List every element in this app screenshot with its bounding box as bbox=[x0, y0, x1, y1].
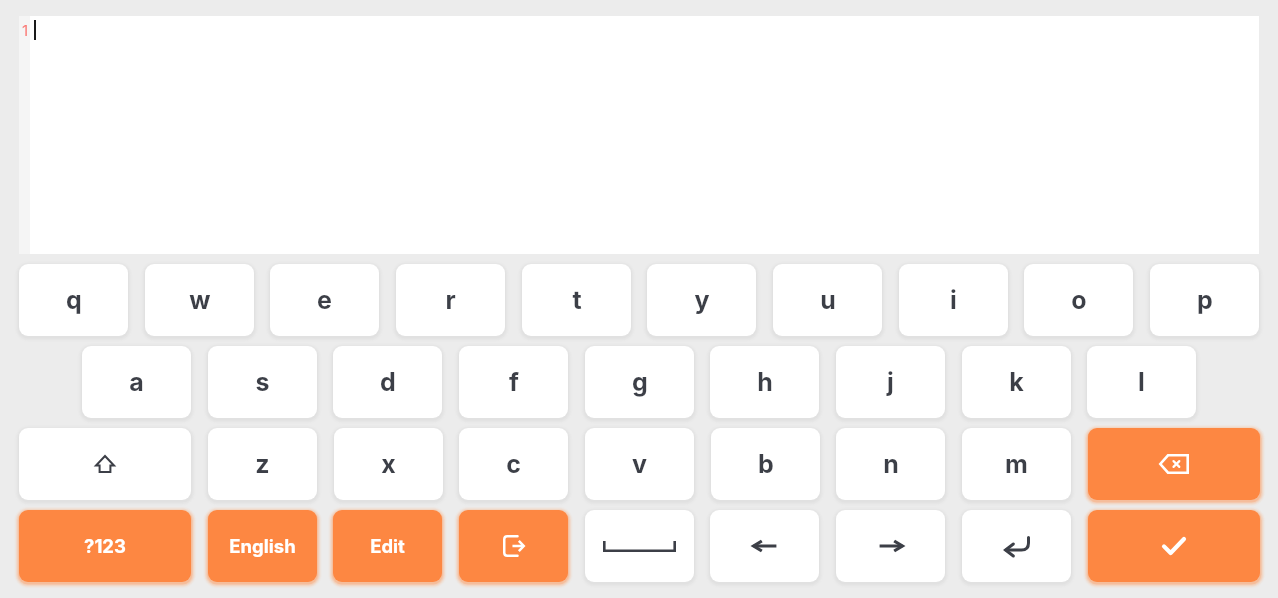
staticText: d bbox=[380, 367, 396, 397]
staticText: x bbox=[381, 449, 396, 479]
button[interactable]: Shift bbox=[19, 428, 191, 500]
button[interactable]: k bbox=[962, 346, 1071, 418]
button[interactable]: Exit bbox=[459, 510, 568, 582]
button[interactable]: u bbox=[773, 264, 882, 336]
button[interactable]: e bbox=[270, 264, 379, 336]
staticText: k bbox=[1009, 367, 1024, 397]
staticText: w bbox=[189, 285, 211, 315]
staticText: y bbox=[694, 285, 710, 315]
staticText: o bbox=[1071, 285, 1087, 315]
staticText: m bbox=[1005, 449, 1028, 479]
button[interactable]: Move cursor right bbox=[836, 510, 945, 582]
staticText: a bbox=[129, 367, 144, 397]
button[interactable]: a bbox=[82, 346, 191, 418]
button[interactable]: o bbox=[1024, 264, 1133, 336]
button[interactable]: l bbox=[1087, 346, 1196, 418]
button[interactable]: g bbox=[585, 346, 694, 418]
staticText: v bbox=[632, 449, 647, 479]
staticText: p bbox=[1197, 285, 1213, 315]
button[interactable]: m bbox=[962, 428, 1071, 500]
button[interactable]: t bbox=[522, 264, 631, 336]
staticText: g bbox=[632, 367, 648, 397]
button[interactable]: Done bbox=[1088, 510, 1260, 582]
button[interactable]: ?123 bbox=[19, 510, 191, 582]
staticText: z bbox=[255, 449, 270, 479]
button[interactable]: Space bbox=[585, 510, 694, 582]
staticText: l bbox=[1138, 367, 1145, 397]
button[interactable]: v bbox=[585, 428, 694, 500]
button[interactable]: English bbox=[208, 510, 317, 582]
button[interactable]: Move cursor left bbox=[710, 510, 819, 582]
button[interactable]: Backspace bbox=[1088, 428, 1260, 500]
button[interactable]: n bbox=[836, 428, 945, 500]
button[interactable]: c bbox=[459, 428, 568, 500]
staticText: 1 bbox=[22, 21, 29, 39]
button[interactable]: i bbox=[899, 264, 1008, 336]
staticText: n bbox=[883, 449, 899, 479]
staticText: j bbox=[887, 367, 894, 397]
button[interactable]: w bbox=[145, 264, 254, 336]
staticText: u bbox=[820, 285, 836, 315]
staticText: c bbox=[506, 449, 521, 479]
staticText: ?123 bbox=[84, 535, 126, 557]
button[interactable]: s bbox=[208, 346, 317, 418]
staticText: b bbox=[758, 449, 774, 479]
button[interactable]: y bbox=[647, 264, 756, 336]
staticText: e bbox=[317, 285, 332, 315]
button[interactable]: x bbox=[334, 428, 443, 500]
staticText: f bbox=[509, 367, 519, 397]
button[interactable]: r bbox=[396, 264, 505, 336]
staticText: Edit bbox=[370, 535, 405, 557]
staticText: s bbox=[255, 367, 270, 397]
button[interactable]: Enter bbox=[962, 510, 1071, 582]
button[interactable]: Edit bbox=[333, 510, 442, 582]
staticText: English bbox=[229, 535, 296, 557]
button[interactable]: q bbox=[19, 264, 128, 336]
button[interactable]: p bbox=[1150, 264, 1259, 336]
button[interactable]: d bbox=[333, 346, 442, 418]
button[interactable]: z bbox=[208, 428, 317, 500]
button[interactable]: f bbox=[459, 346, 568, 418]
staticText: r bbox=[445, 285, 456, 315]
button[interactable]: b bbox=[711, 428, 820, 500]
staticText: h bbox=[757, 367, 773, 397]
staticText: t bbox=[572, 285, 582, 315]
button[interactable]: j bbox=[836, 346, 945, 418]
staticText: i bbox=[950, 285, 957, 315]
button[interactable]: h bbox=[710, 346, 819, 418]
staticText: q bbox=[66, 285, 82, 315]
